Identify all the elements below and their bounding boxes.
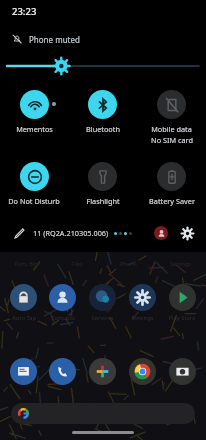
button[interactable]: Search <box>11 403 195 424</box>
button[interactable]: Play Store <box>162 284 202 322</box>
button[interactable]: Mobile data <box>137 88 206 147</box>
button[interactable]: Contacts <box>43 284 82 322</box>
staticText: Services <box>91 314 114 322</box>
button[interactable]: Services <box>82 284 122 322</box>
staticText: Bluetooth <box>86 124 120 134</box>
button[interactable]: Auto Tap <box>4 284 43 322</box>
button[interactable] <box>43 358 82 385</box>
staticText: Contacts <box>51 314 75 322</box>
button[interactable]: Settings <box>122 284 162 322</box>
button[interactable]: Brightness <box>7 58 199 74</box>
button[interactable] <box>82 358 122 385</box>
staticText: Settings <box>170 260 191 267</box>
staticText: Parts Bin <box>14 260 38 267</box>
button[interactable]: Bluetooth <box>68 88 137 136</box>
staticText: Do Not Disturb <box>8 196 60 206</box>
button[interactable]: Edit tiles <box>10 224 28 242</box>
staticText: Auto Tap <box>12 314 36 322</box>
staticText: Flashlight <box>86 196 120 206</box>
button[interactable] <box>122 358 162 385</box>
button[interactable]: Mementos <box>0 88 68 136</box>
staticText: 11 (RQ2A.210305.006) <box>33 228 109 238</box>
button[interactable]: Flashlight <box>68 160 137 208</box>
staticText: Mementos <box>16 124 53 134</box>
button[interactable]: Battery Saver <box>137 160 206 208</box>
button[interactable]: Do Not Disturb <box>0 160 68 208</box>
button[interactable]: Settings <box>178 224 196 242</box>
staticText: Battery Saver <box>149 196 195 206</box>
staticText: No SIM card <box>151 135 193 145</box>
button[interactable]: User <box>154 226 168 240</box>
staticText: Play Store <box>168 314 196 322</box>
staticText: Mobile data <box>151 124 192 134</box>
button[interactable] <box>162 358 202 385</box>
staticText: Files <box>71 260 83 267</box>
button[interactable] <box>4 358 43 385</box>
staticText: Settings <box>131 314 154 322</box>
staticText: 23:23 <box>12 5 37 18</box>
staticText: Phone <box>120 260 137 267</box>
staticText: Phone muted <box>29 34 80 45</box>
